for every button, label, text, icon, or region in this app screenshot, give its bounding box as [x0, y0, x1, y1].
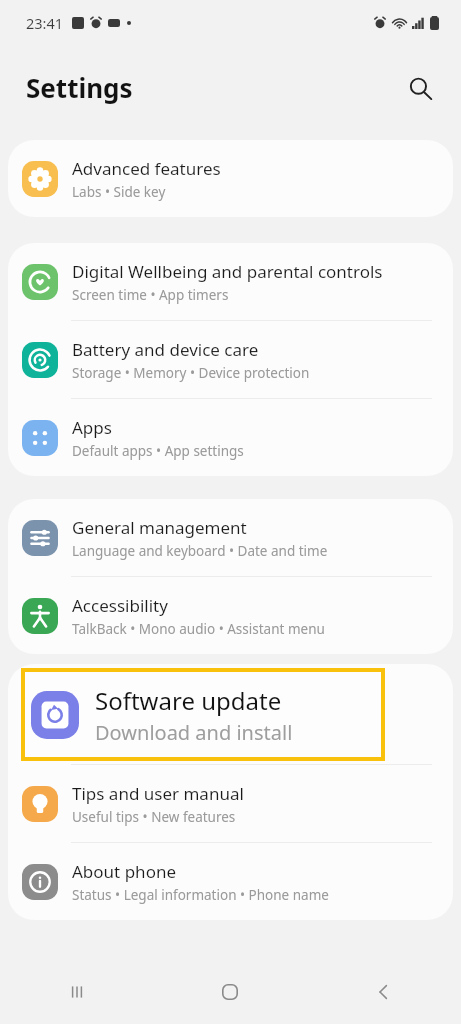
button[interactable]: Battery and device care — [8, 321, 453, 398]
staticText: Useful tips • New features — [72, 808, 236, 826]
button[interactable]: Recents — [0, 960, 153, 1024]
button[interactable]: General management — [8, 499, 453, 576]
button[interactable]: Home — [153, 960, 307, 1024]
staticText: Storage • Memory • Device protection — [72, 364, 310, 382]
staticText: Default apps • App settings — [72, 442, 244, 460]
button[interactable]: Tips and user manual — [8, 765, 453, 842]
staticText: TalkBack • Mono audio • Assistant menu — [72, 620, 325, 638]
button[interactable]: Accessibility — [8, 577, 453, 654]
staticText: Advanced features — [72, 157, 221, 180]
staticText: Accessibility — [72, 594, 168, 617]
staticText: General management — [72, 516, 247, 539]
button[interactable]: Search — [397, 65, 443, 111]
button[interactable]: Digital Wellbeing and parental controls — [8, 243, 453, 320]
button[interactable]: Back — [307, 960, 461, 1024]
staticText: Screen time • App timers — [72, 286, 229, 304]
button[interactable]: About phone — [8, 843, 453, 920]
button[interactable]: Software update — [8, 664, 453, 764]
staticText: Labs • Side key — [72, 183, 166, 201]
button[interactable]: Advanced features — [8, 140, 453, 217]
button[interactable]: Apps — [8, 399, 453, 476]
staticText: Tips and user manual — [72, 782, 244, 805]
staticText: Digital Wellbeing and parental controls — [72, 260, 383, 283]
staticText: Settings — [26, 70, 133, 105]
staticText: Apps — [72, 416, 112, 439]
staticText: Software update — [95, 684, 282, 717]
staticText: About phone — [72, 860, 177, 883]
staticText: Language and keyboard • Date and time — [72, 542, 328, 560]
staticText: Status • Legal information • Phone name — [72, 886, 329, 904]
staticText: Download and install — [95, 719, 293, 746]
staticText: Battery and device care — [72, 338, 259, 361]
staticText: 23:41 — [26, 13, 64, 33]
